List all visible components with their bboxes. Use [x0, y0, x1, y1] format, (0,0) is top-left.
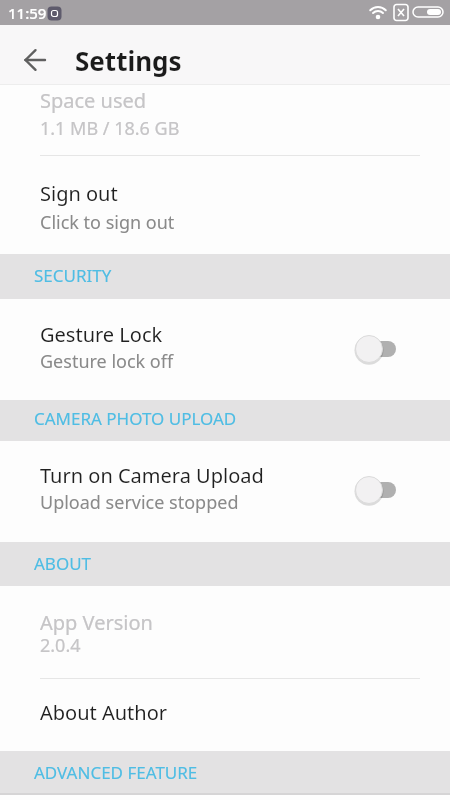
staticText: ABOUT: [34, 552, 92, 575]
staticText: 1.1 MB / 18.6 GB: [40, 116, 180, 140]
button[interactable]: Gesture Lock: [0, 299, 450, 400]
staticText: Gesture Lock: [40, 321, 163, 345]
button[interactable]: [13, 37, 59, 83]
staticText: Upload service stopped: [40, 490, 239, 514]
staticText: Turn on Camera Upload: [40, 462, 264, 486]
staticText: Sign out: [40, 180, 118, 204]
button[interactable]: About Author: [0, 679, 450, 751]
button[interactable]: [352, 472, 404, 508]
staticText: Gesture lock off: [40, 349, 174, 373]
staticText: Settings: [75, 43, 182, 67]
staticText: 2.0.4: [40, 633, 81, 657]
staticText: 11:59: [8, 3, 47, 23]
staticText: ADVANCED FEATURE: [34, 761, 198, 784]
staticText: CAMERA PHOTO UPLOAD: [34, 407, 237, 430]
button[interactable]: [352, 331, 404, 367]
button[interactable]: Sign out: [0, 156, 450, 254]
staticText: Space used: [40, 87, 147, 111]
staticText: About Author: [40, 699, 168, 723]
staticText: App Version: [40, 609, 153, 633]
staticText: SECURITY: [34, 264, 112, 287]
staticText: Click to sign out: [40, 210, 175, 234]
button[interactable]: Turn on Camera Upload: [0, 441, 450, 542]
